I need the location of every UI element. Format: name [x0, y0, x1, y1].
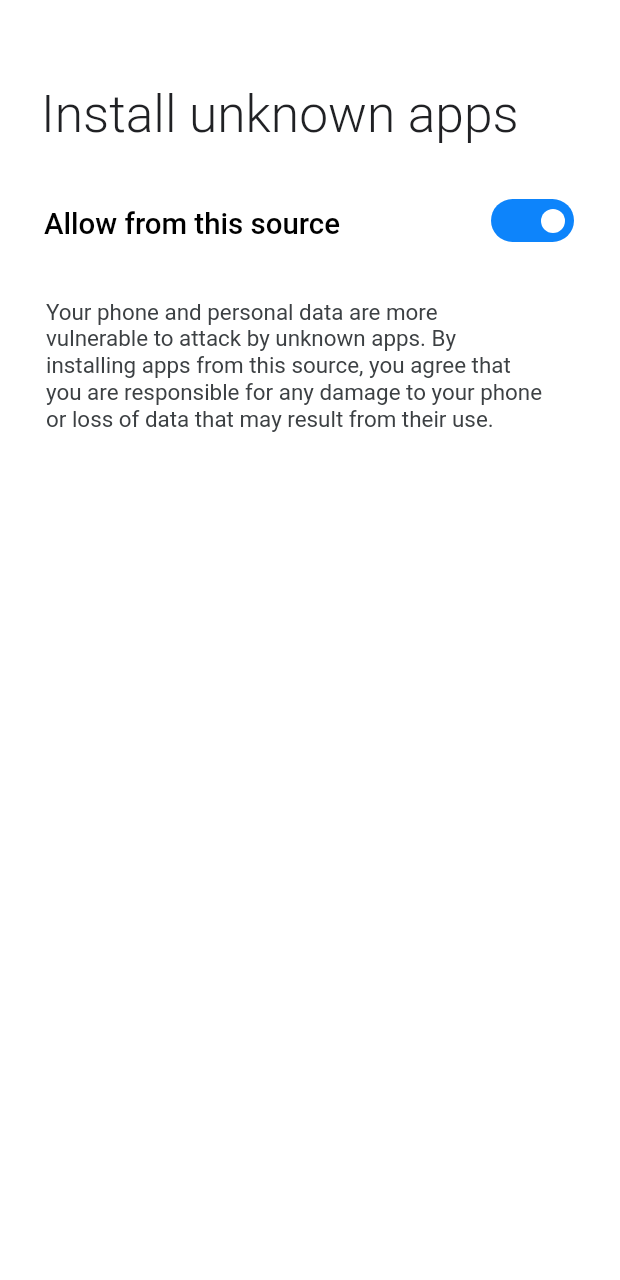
button[interactable]: Allow from this source	[491, 199, 574, 242]
staticText: Allow from this source	[44, 207, 340, 241]
button[interactable]: Allow from this source	[0, 186, 620, 256]
staticText: Your phone and personal data are more vu…	[46, 299, 545, 432]
staticText: Install unknown apps	[41, 84, 519, 144]
